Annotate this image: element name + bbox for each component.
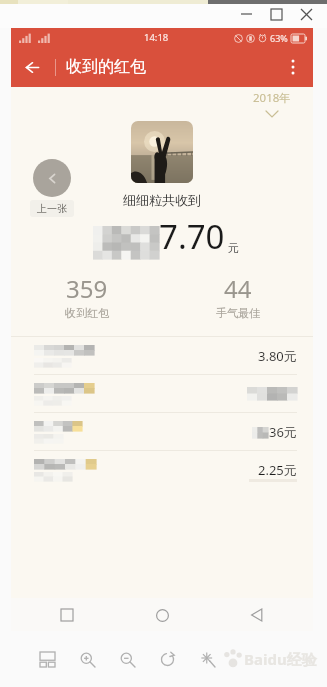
- button[interactable]: Close: [291, 3, 321, 25]
- button[interactable]: More options: [273, 47, 313, 87]
- button[interactable]: 3.80元: [11, 337, 313, 374]
- staticText: 2018年: [253, 90, 291, 106]
- button[interactable]: [11, 375, 313, 412]
- button[interactable]: 36元: [11, 413, 313, 450]
- button[interactable]: Maximize: [261, 3, 291, 25]
- staticText: 7.70: [159, 214, 225, 258]
- staticText: Baidu经验: [244, 649, 317, 669]
- button[interactable]: 359: [11, 272, 162, 320]
- staticText: 元: [228, 241, 239, 255]
- button[interactable]: Back: [241, 599, 273, 631]
- button[interactable]: 44: [162, 272, 313, 320]
- button[interactable]: Back: [11, 47, 51, 87]
- button[interactable]: Recents: [51, 599, 83, 631]
- button[interactable]: Zoom in: [74, 646, 100, 672]
- button[interactable]: Home: [146, 599, 178, 631]
- button[interactable]: Rotate: [154, 646, 180, 672]
- staticText: 36元: [269, 423, 297, 441]
- staticText: 63%: [270, 32, 288, 44]
- button[interactable]: 2.25元: [11, 451, 313, 488]
- staticText: 3.80元: [258, 347, 297, 365]
- staticText: 收到红包: [65, 306, 109, 320]
- button[interactable]: Effects: [194, 646, 220, 672]
- staticText: 上一张: [37, 202, 67, 215]
- staticText: 359: [66, 272, 108, 305]
- staticText: 收到的红包: [66, 57, 146, 77]
- staticText: 手气最佳: [216, 306, 260, 320]
- button[interactable]: Zoom out: [114, 646, 140, 672]
- staticText: 44: [224, 272, 252, 305]
- button[interactable]: [131, 121, 193, 183]
- staticText: 细细粒共收到: [123, 192, 201, 208]
- button[interactable]: Minimize: [231, 3, 261, 25]
- staticText: 14:18: [144, 31, 169, 44]
- button[interactable]: 2018年: [253, 90, 291, 117]
- button[interactable]: Layout: [34, 646, 60, 672]
- staticText: 2.25元: [258, 461, 297, 479]
- button[interactable]: Previous: [33, 159, 71, 197]
